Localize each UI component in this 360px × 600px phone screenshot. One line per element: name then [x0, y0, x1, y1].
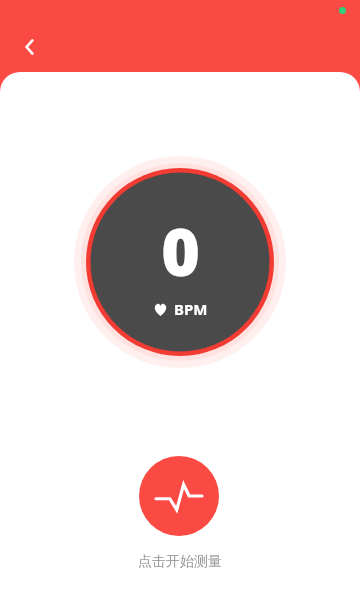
button[interactable]: Back	[12, 29, 48, 65]
staticText: BPM	[174, 299, 208, 319]
staticText: 点击开始测量	[138, 553, 222, 571]
staticText: 0	[161, 205, 200, 295]
button[interactable]: 开始测量	[139, 456, 219, 536]
